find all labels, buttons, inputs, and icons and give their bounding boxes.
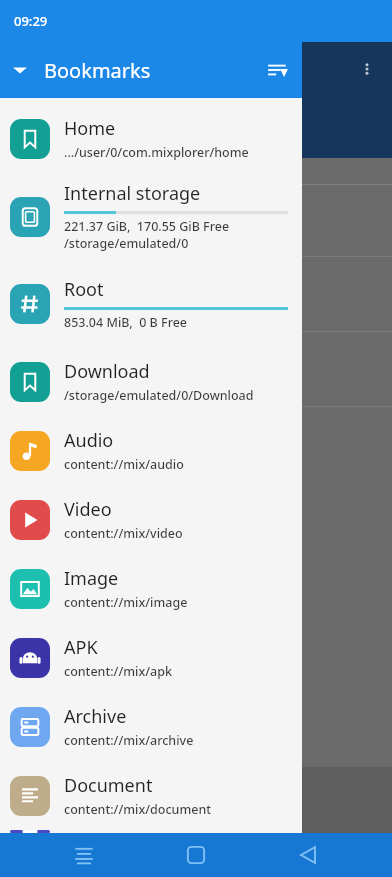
staticText: Audio [64,428,114,453]
button[interactable]: Archive [0,692,302,761]
staticText: Document [64,773,153,798]
staticText: APK [64,635,98,660]
staticText: Audio [6,197,53,220]
staticText: Download [64,359,150,384]
staticText: content://mix/image [64,594,188,611]
staticText: content://mix/video [64,525,183,542]
button[interactable]: Back [280,833,336,877]
staticText: 39 MiB | [6,305,59,323]
button[interactable]: Home [168,833,224,877]
staticText: Video [6,347,51,370]
button[interactable]: Audio [0,416,302,485]
staticText: 1 GiB | 1 [6,380,60,398]
button[interactable]: Sort [258,50,298,90]
staticText: content://mix/document [64,801,212,818]
staticText: Internal storage [64,181,201,206]
button[interactable]: Download [0,347,302,416]
staticText: 221.37 GiB, 170.55 GiB Free [64,218,230,235]
button[interactable]: App [0,830,302,833]
staticText: Bookmarks [44,57,151,84]
staticText: content://mix/audio [64,456,184,473]
staticText: Archive [64,704,127,729]
staticText: content://mix/archive [64,732,194,749]
staticText: /storage/emulated/0 [64,235,189,252]
button[interactable]: Recents [56,833,112,877]
staticText: .../user/0/com.mixplorer/home [64,144,249,161]
button[interactable]: APK [0,623,302,692]
button[interactable]: Bookmarks [0,42,302,98]
staticText: 4 MiB | 4 [6,230,63,248]
staticText: Video [64,497,112,522]
button[interactable]: Home [0,104,302,173]
button[interactable]: Video [0,485,302,554]
staticText: Root [64,277,104,302]
staticText: 09:29 [14,12,48,30]
staticText: Image [64,566,119,591]
button[interactable]: Document [0,761,302,830]
staticText: /storage/emulated/0/Download [64,387,254,404]
staticText: Image [6,272,58,295]
button[interactable]: Root [0,260,302,347]
staticText: 853.04 MiB, 0 B Free [64,314,188,331]
button[interactable]: Image [0,554,302,623]
button[interactable]: More options [350,52,384,86]
button[interactable]: Internal storage [0,173,302,260]
staticText: content://mix/apk [64,663,172,680]
staticText: Home [64,116,116,141]
